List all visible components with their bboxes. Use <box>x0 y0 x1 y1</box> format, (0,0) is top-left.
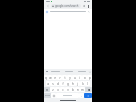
staticText: d <box>57 82 59 86</box>
staticText: i <box>79 76 80 80</box>
staticText: l <box>87 82 88 86</box>
staticText: w <box>49 76 52 80</box>
button[interactable]: e <box>52 75 57 80</box>
button[interactable]: x <box>55 87 60 92</box>
staticText: z <box>52 88 54 92</box>
staticText: m <box>81 88 84 92</box>
button[interactable]: y <box>67 75 72 80</box>
button[interactable] <box>48 71 62 72</box>
button[interactable]: v <box>65 87 70 92</box>
button[interactable]: t <box>62 75 67 80</box>
button[interactable]: a <box>46 81 50 86</box>
button[interactable]: c <box>60 87 65 92</box>
button[interactable]: w <box>48 75 52 80</box>
staticText: g <box>67 82 69 86</box>
button[interactable]: r <box>57 75 62 80</box>
button[interactable]: Space <box>56 93 79 98</box>
button[interactable]: b <box>70 87 75 92</box>
staticText: t <box>64 76 66 80</box>
staticText: o <box>84 76 86 80</box>
staticText: f <box>62 82 64 86</box>
button[interactable]: d <box>55 81 60 86</box>
staticText: r <box>59 76 61 80</box>
button[interactable]: ?123 <box>44 93 51 98</box>
button[interactable]: google.com/search <box>51 4 81 8</box>
staticText: c <box>62 88 64 92</box>
staticText: a <box>47 82 49 86</box>
staticText: v <box>67 88 69 92</box>
button[interactable]: z <box>50 87 55 92</box>
button[interactable]: Emoji <box>51 93 56 98</box>
staticText: b <box>72 88 74 92</box>
button[interactable]: f <box>60 81 65 86</box>
staticText: . <box>81 94 82 98</box>
button[interactable] <box>75 71 88 72</box>
staticText: p <box>89 76 91 80</box>
button[interactable]: Shift <box>44 87 50 92</box>
button[interactable] <box>62 71 75 72</box>
button[interactable]: Expand suggestions <box>88 70 91 73</box>
button[interactable]: Go <box>84 93 92 98</box>
button[interactable]: u <box>72 75 77 80</box>
button[interactable]: q <box>44 75 48 80</box>
staticText: j <box>77 82 78 86</box>
button[interactable]: l <box>85 81 90 86</box>
staticText: s <box>52 82 54 86</box>
staticText: x <box>57 88 59 92</box>
button[interactable]: Voice input <box>45 70 48 73</box>
button[interactable]: More options <box>86 4 90 8</box>
button[interactable]: j <box>75 81 80 86</box>
staticText: u <box>74 76 76 80</box>
staticText: google.com/search <box>55 4 79 8</box>
staticText: h <box>72 82 74 86</box>
button[interactable]: h <box>70 81 75 86</box>
staticText: n <box>77 88 79 92</box>
staticText: q <box>45 76 47 80</box>
button[interactable]: k <box>80 81 85 86</box>
button[interactable] <box>44 9 92 14</box>
button[interactable]: n <box>75 87 80 92</box>
button[interactable]: i <box>77 75 82 80</box>
staticText: k <box>82 82 84 86</box>
button[interactable]: g <box>65 81 70 86</box>
button[interactable]: Share <box>82 4 86 8</box>
button[interactable]: Backspace <box>85 87 92 92</box>
button[interactable]: Back <box>46 4 50 8</box>
button[interactable]: . <box>79 93 84 98</box>
staticText: ?123 <box>45 94 50 97</box>
button[interactable]: o <box>82 75 87 80</box>
button[interactable]: p <box>87 75 92 80</box>
button[interactable]: s <box>50 81 55 86</box>
button[interactable]: m <box>80 87 85 92</box>
staticText: e <box>54 76 56 80</box>
staticText: y <box>69 76 71 80</box>
